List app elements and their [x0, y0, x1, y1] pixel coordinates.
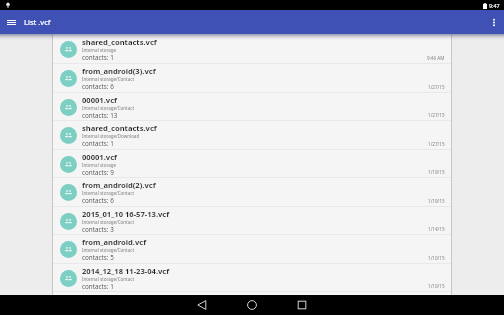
- staticText: Internal storage/Contact: [82, 190, 135, 196]
- button[interactable]: 2015_01_10 16-57-13.vcf: [53, 207, 451, 235]
- staticText: from_android(3).vcf: [82, 66, 156, 76]
- staticText: 1/27/15: [428, 112, 445, 118]
- staticText: from_android.vcf: [82, 237, 147, 247]
- staticText: 2014_12_18 11-23-04.vcf: [82, 266, 170, 276]
- staticText: 1/14/15: [428, 226, 445, 232]
- staticText: shared_contacts.vcf: [82, 37, 157, 47]
- staticText: 9:46 AM: [427, 55, 445, 61]
- staticText: 1/27/15: [428, 141, 445, 147]
- staticText: contacts: 6: [82, 82, 114, 91]
- staticText: Internal storage/Download: [82, 133, 140, 139]
- staticText: Internal storage/Contact: [82, 219, 135, 225]
- staticText: shared_contacts.vcf: [82, 123, 157, 133]
- button[interactable]: from_android(2).vcf: [53, 178, 451, 207]
- staticText: 9:47: [489, 2, 500, 9]
- staticText: contacts: 13: [82, 111, 118, 120]
- staticText: 1/19/15: [428, 198, 445, 204]
- staticText: List .vcf: [24, 17, 51, 27]
- button[interactable]: from_android.vcf: [53, 235, 451, 264]
- staticText: contacts: 1: [82, 139, 114, 148]
- button[interactable]: Recent apps: [289, 295, 315, 315]
- staticText: Internal storage/Contact: [82, 105, 135, 111]
- staticText: contacts: 3: [82, 225, 114, 234]
- staticText: 1/10/15: [428, 255, 445, 261]
- button[interactable]: 00001.vcf: [53, 150, 451, 178]
- staticText: from_android(2).vcf: [82, 180, 156, 190]
- staticText: 1/10/15: [428, 283, 445, 289]
- button[interactable]: from_android(3).vcf: [53, 64, 451, 93]
- staticText: Internal storage: [82, 47, 117, 53]
- button[interactable]: 00001.vcf: [53, 93, 451, 121]
- button[interactable]: shared_contacts.vcf: [53, 121, 451, 150]
- button[interactable]: Home: [239, 295, 265, 315]
- staticText: contacts: 9: [82, 168, 114, 177]
- staticText: 1/27/15: [428, 84, 445, 90]
- button[interactable]: Open navigation drawer: [5, 16, 17, 28]
- staticText: contacts: 1: [82, 282, 114, 291]
- staticText: Internal storage: [82, 162, 117, 168]
- button[interactable]: shared_contacts.vcf: [53, 35, 451, 64]
- button[interactable]: 2014_12_18 11-23-04.vcf: [53, 264, 451, 292]
- staticText: 2015_01_10 16-57-13.vcf: [82, 209, 170, 219]
- staticText: Internal storage/Contact: [82, 247, 135, 253]
- staticText: 00001.vcf: [82, 152, 118, 162]
- staticText: contacts: 5: [82, 253, 114, 262]
- staticText: 00001.vcf: [82, 95, 118, 105]
- staticText: Internal storage/Contact: [82, 76, 135, 82]
- button[interactable]: More options: [487, 15, 501, 29]
- staticText: 1/19/15: [428, 169, 445, 175]
- staticText: contacts: 6: [82, 196, 114, 205]
- staticText: contacts: 1: [82, 53, 114, 62]
- staticText: Internal storage/Contact: [82, 276, 135, 282]
- button[interactable]: Back: [189, 295, 215, 315]
